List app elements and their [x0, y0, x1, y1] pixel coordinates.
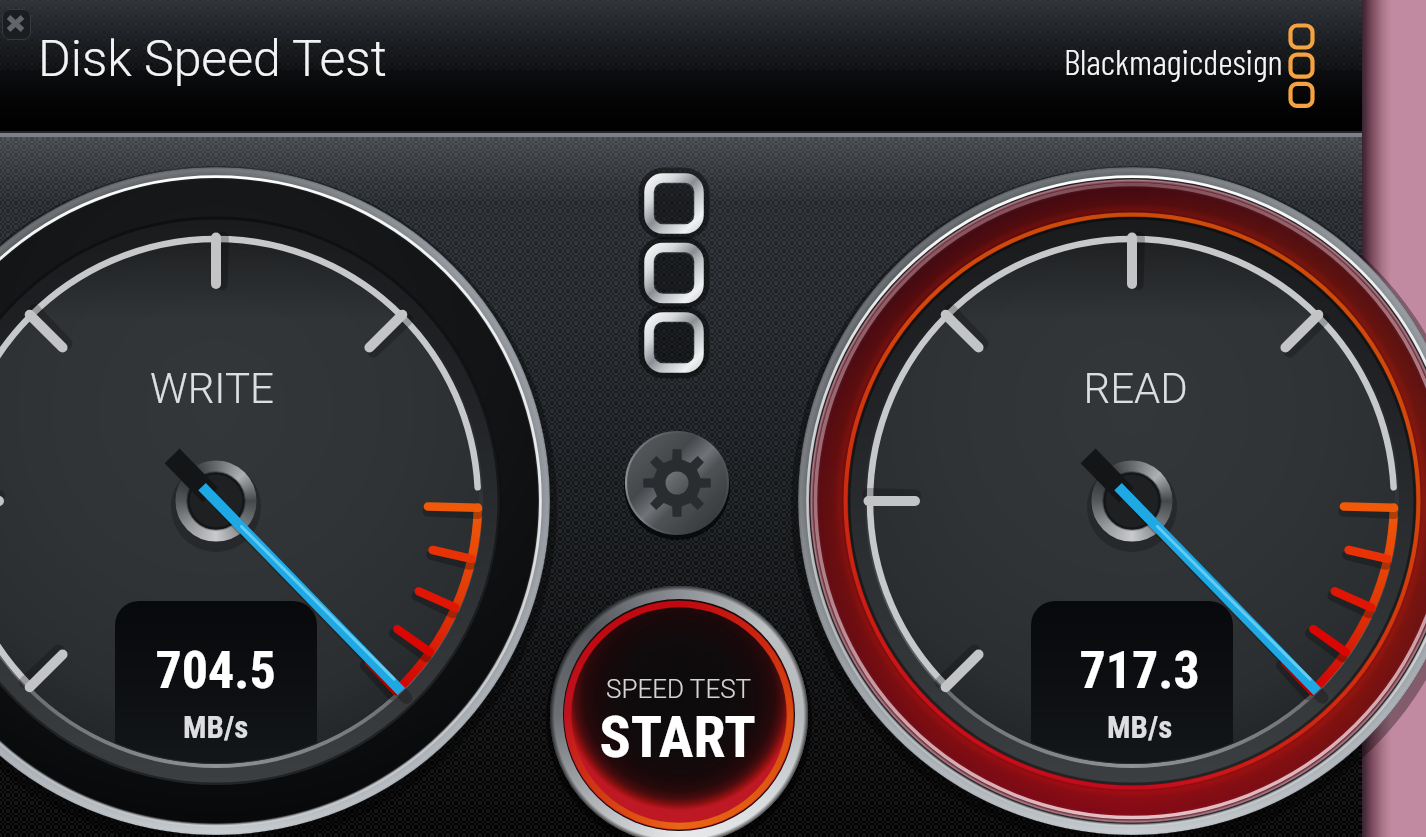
button[interactable]: Write speed gauge 704.5 MB/s: [0, 167, 550, 837]
button[interactable]: Stress level 1: [644, 173, 704, 234]
button[interactable]: Read speed gauge 717.3 MB/s: [798, 167, 1426, 837]
button[interactable]: Speed Test Start: [550, 586, 808, 837]
button[interactable]: Stress level 3: [644, 312, 704, 373]
button[interactable]: Close window: [2, 9, 31, 40]
button[interactable]: Settings: [625, 431, 729, 535]
button[interactable]: Stress level 2: [644, 242, 704, 303]
